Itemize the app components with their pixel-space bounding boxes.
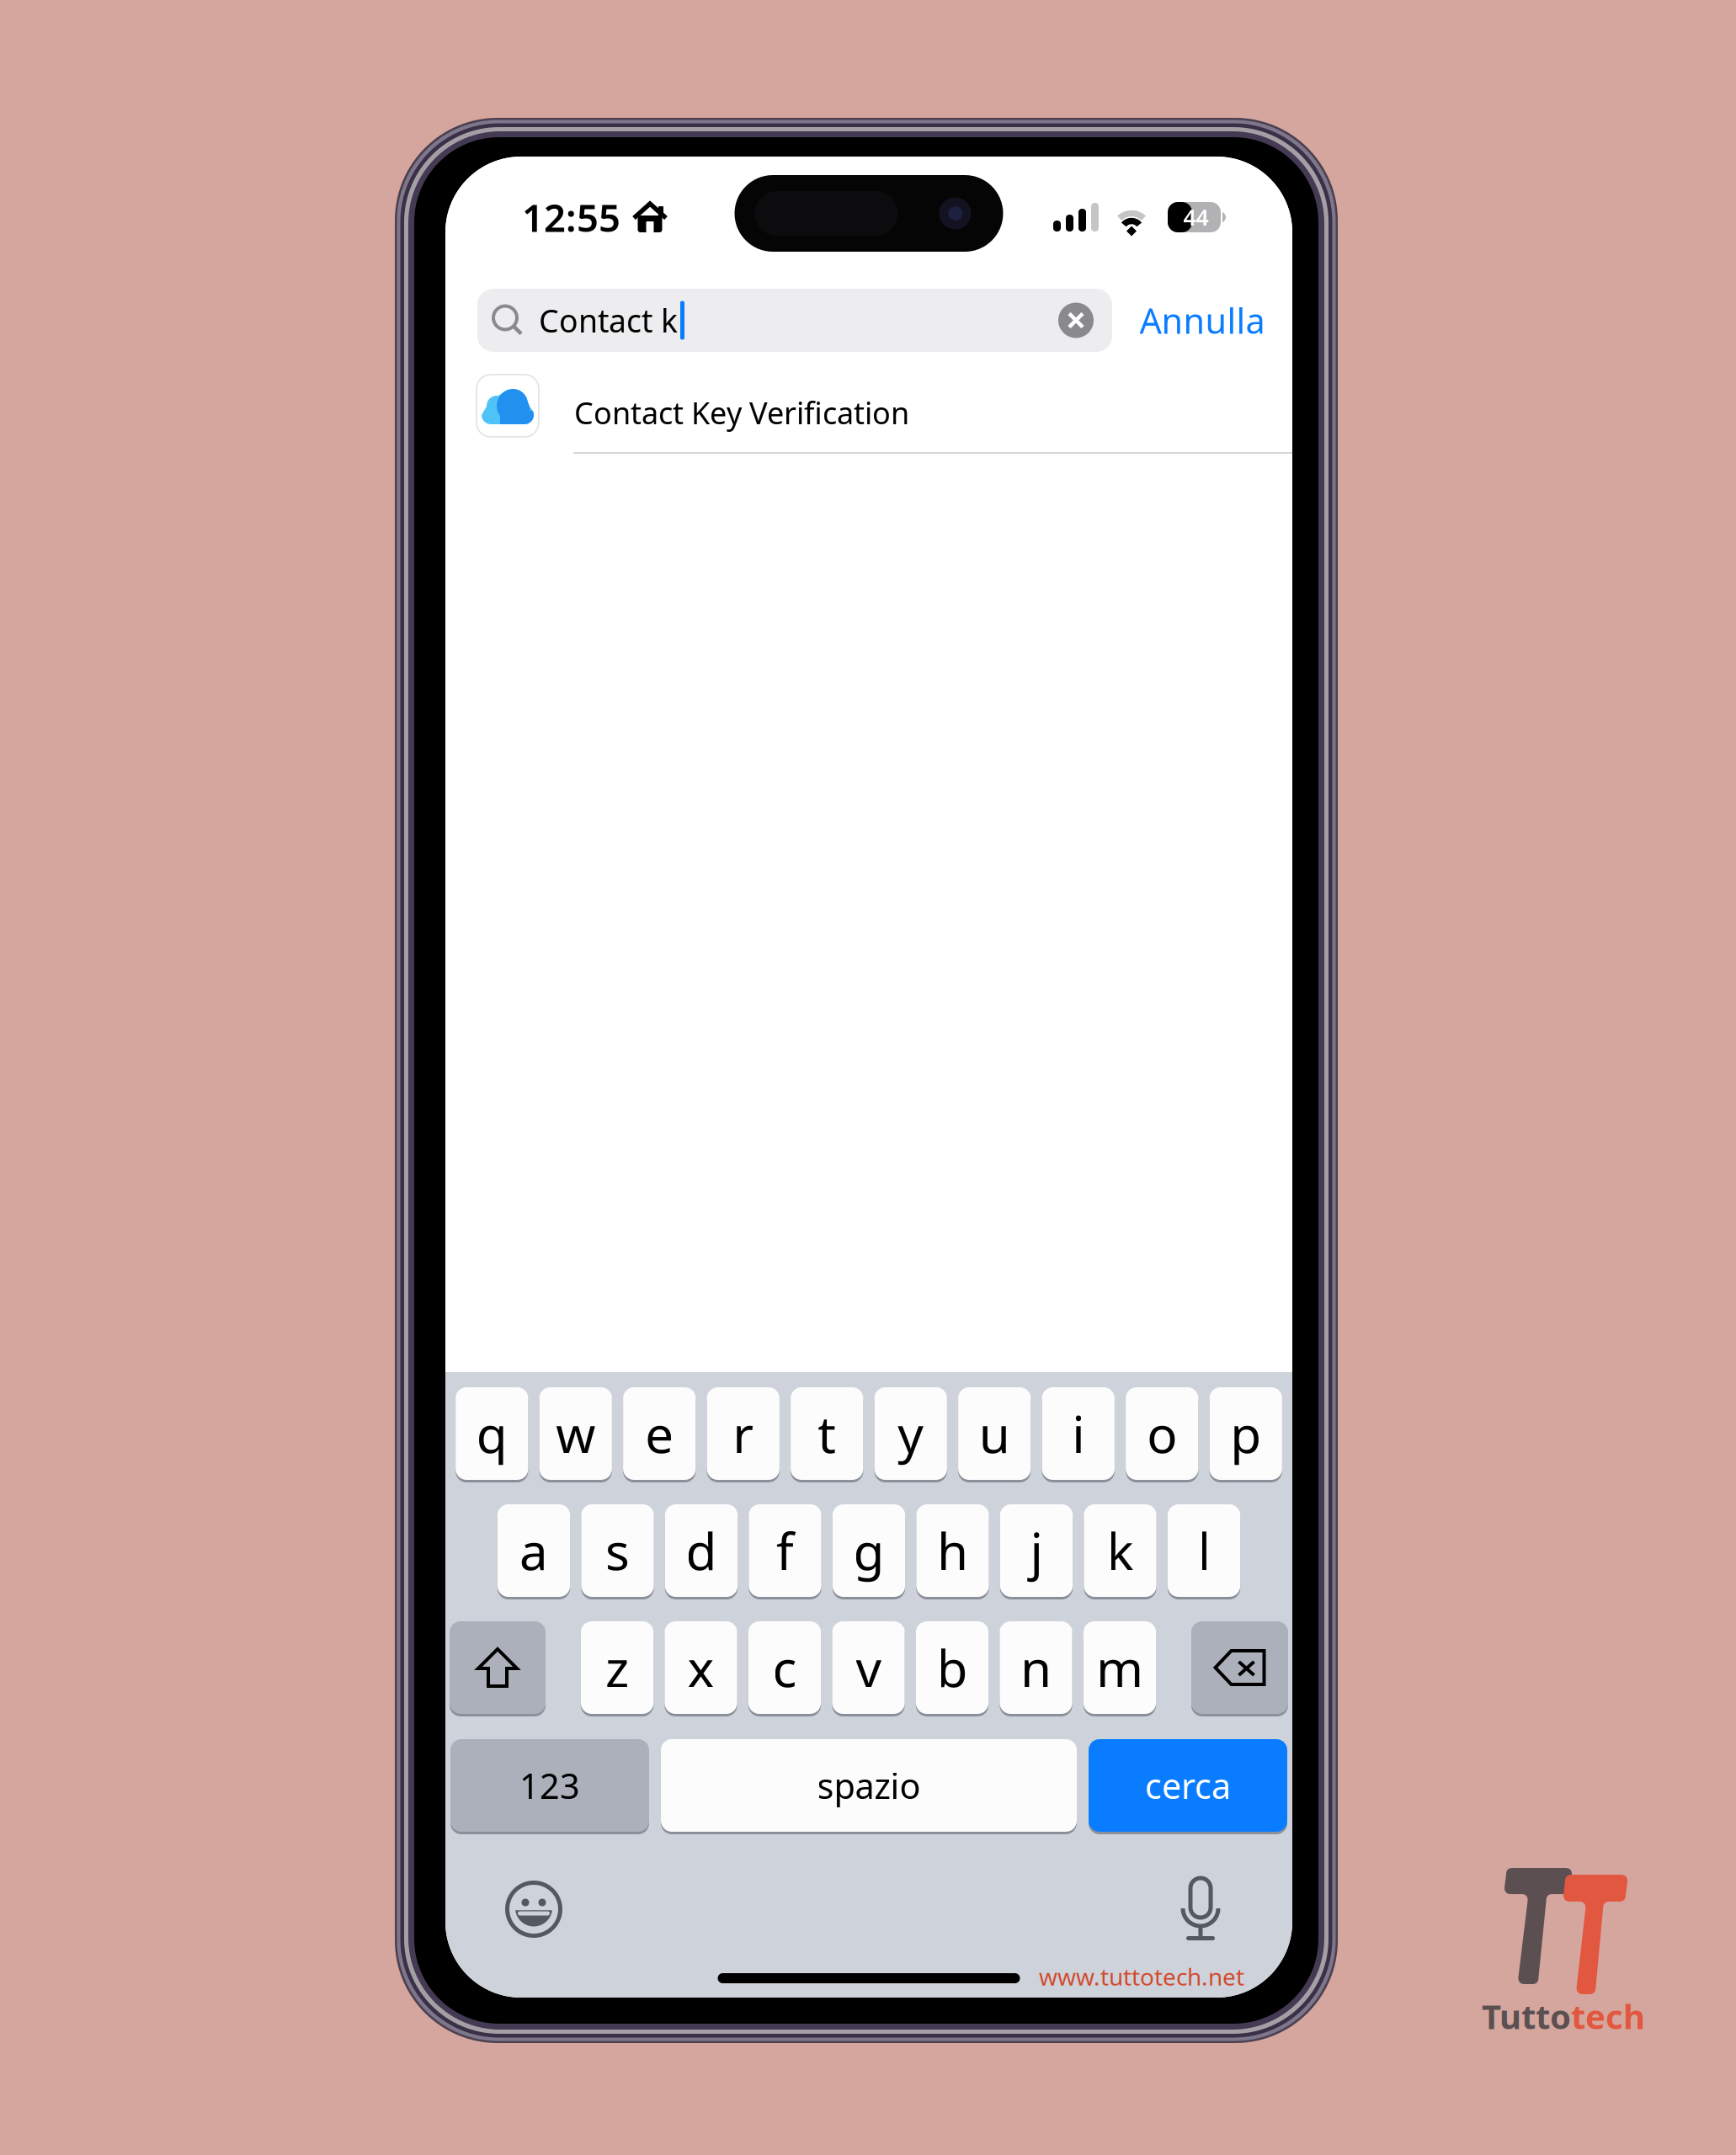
button[interactable]: y — [874, 1387, 947, 1480]
staticText: w — [556, 1400, 595, 1467]
staticText: l — [1198, 1517, 1210, 1584]
staticText: k — [1107, 1517, 1134, 1584]
button[interactable]: f — [749, 1504, 821, 1597]
staticText: z — [605, 1634, 629, 1701]
staticText: q — [476, 1400, 507, 1467]
button[interactable]: m — [1083, 1621, 1156, 1714]
button[interactable]: t — [791, 1387, 863, 1480]
staticText: f — [776, 1517, 794, 1584]
button[interactable]: v — [832, 1621, 905, 1714]
staticText: e — [645, 1400, 674, 1467]
staticText: m — [1096, 1634, 1143, 1701]
button[interactable]: Dictation — [1180, 1878, 1221, 1940]
button[interactable]: 123 — [450, 1739, 649, 1832]
button[interactable]: Annulla — [1112, 289, 1292, 352]
button[interactable]: a — [497, 1504, 570, 1597]
staticText: r — [733, 1400, 754, 1467]
button[interactable]: spazio — [661, 1739, 1077, 1832]
staticText: www.tuttotech.net — [1039, 1961, 1244, 1992]
staticText: t — [818, 1400, 836, 1467]
staticText: h — [937, 1517, 968, 1584]
button[interactable]: u — [958, 1387, 1031, 1480]
staticText: 44 — [1183, 202, 1209, 232]
button[interactable]: d — [665, 1504, 738, 1597]
button[interactable]: s — [581, 1504, 654, 1597]
button[interactable]: Delete — [1191, 1621, 1288, 1714]
staticText: n — [1020, 1634, 1052, 1701]
button[interactable]: h — [916, 1504, 989, 1597]
staticText: 12:55 — [522, 192, 620, 243]
staticText: x — [687, 1634, 714, 1701]
staticText: g — [853, 1517, 884, 1584]
button[interactable]: Contact Key Verification — [445, 359, 1292, 454]
button[interactable]: b — [916, 1621, 988, 1714]
staticText: cerca — [1145, 1762, 1231, 1809]
button[interactable]: l — [1168, 1504, 1240, 1597]
button[interactable]: g — [833, 1504, 905, 1597]
button[interactable]: n — [1000, 1621, 1072, 1714]
staticText: o — [1147, 1400, 1177, 1467]
staticText: spazio — [817, 1762, 921, 1809]
button[interactable]: i — [1042, 1387, 1115, 1480]
staticText: d — [686, 1517, 717, 1584]
staticText: tech — [1571, 1994, 1645, 2038]
button[interactable]: c — [748, 1621, 821, 1714]
staticText: p — [1230, 1400, 1261, 1467]
button[interactable]: e — [623, 1387, 696, 1480]
staticText: b — [937, 1634, 968, 1701]
button[interactable]: q — [456, 1387, 528, 1480]
button[interactable]: k — [1084, 1504, 1157, 1597]
button[interactable]: x — [665, 1621, 737, 1714]
staticText: s — [605, 1517, 630, 1584]
button[interactable]: cerca — [1089, 1739, 1287, 1832]
staticText: Tutto — [1482, 1994, 1571, 2038]
staticText: j — [1030, 1517, 1043, 1584]
button[interactable]: Emoji keyboard — [505, 1881, 562, 1938]
staticText: u — [979, 1400, 1010, 1467]
button[interactable]: w — [539, 1387, 612, 1480]
button[interactable]: Shift — [450, 1621, 546, 1714]
button[interactable]: o — [1126, 1387, 1198, 1480]
staticText: 123 — [519, 1762, 580, 1809]
button[interactable]: r — [707, 1387, 780, 1480]
staticText: Contact k — [539, 299, 678, 341]
staticText: a — [519, 1517, 548, 1584]
button[interactable]: z — [581, 1621, 653, 1714]
staticText: Contact Key Verification — [574, 392, 909, 433]
staticText: c — [772, 1634, 797, 1701]
staticText: y — [898, 1400, 924, 1467]
staticText: Annulla — [1140, 297, 1265, 343]
button[interactable]: p — [1209, 1387, 1282, 1480]
staticText: i — [1072, 1400, 1085, 1467]
staticText: v — [856, 1634, 881, 1701]
button[interactable]: j — [1000, 1504, 1073, 1597]
